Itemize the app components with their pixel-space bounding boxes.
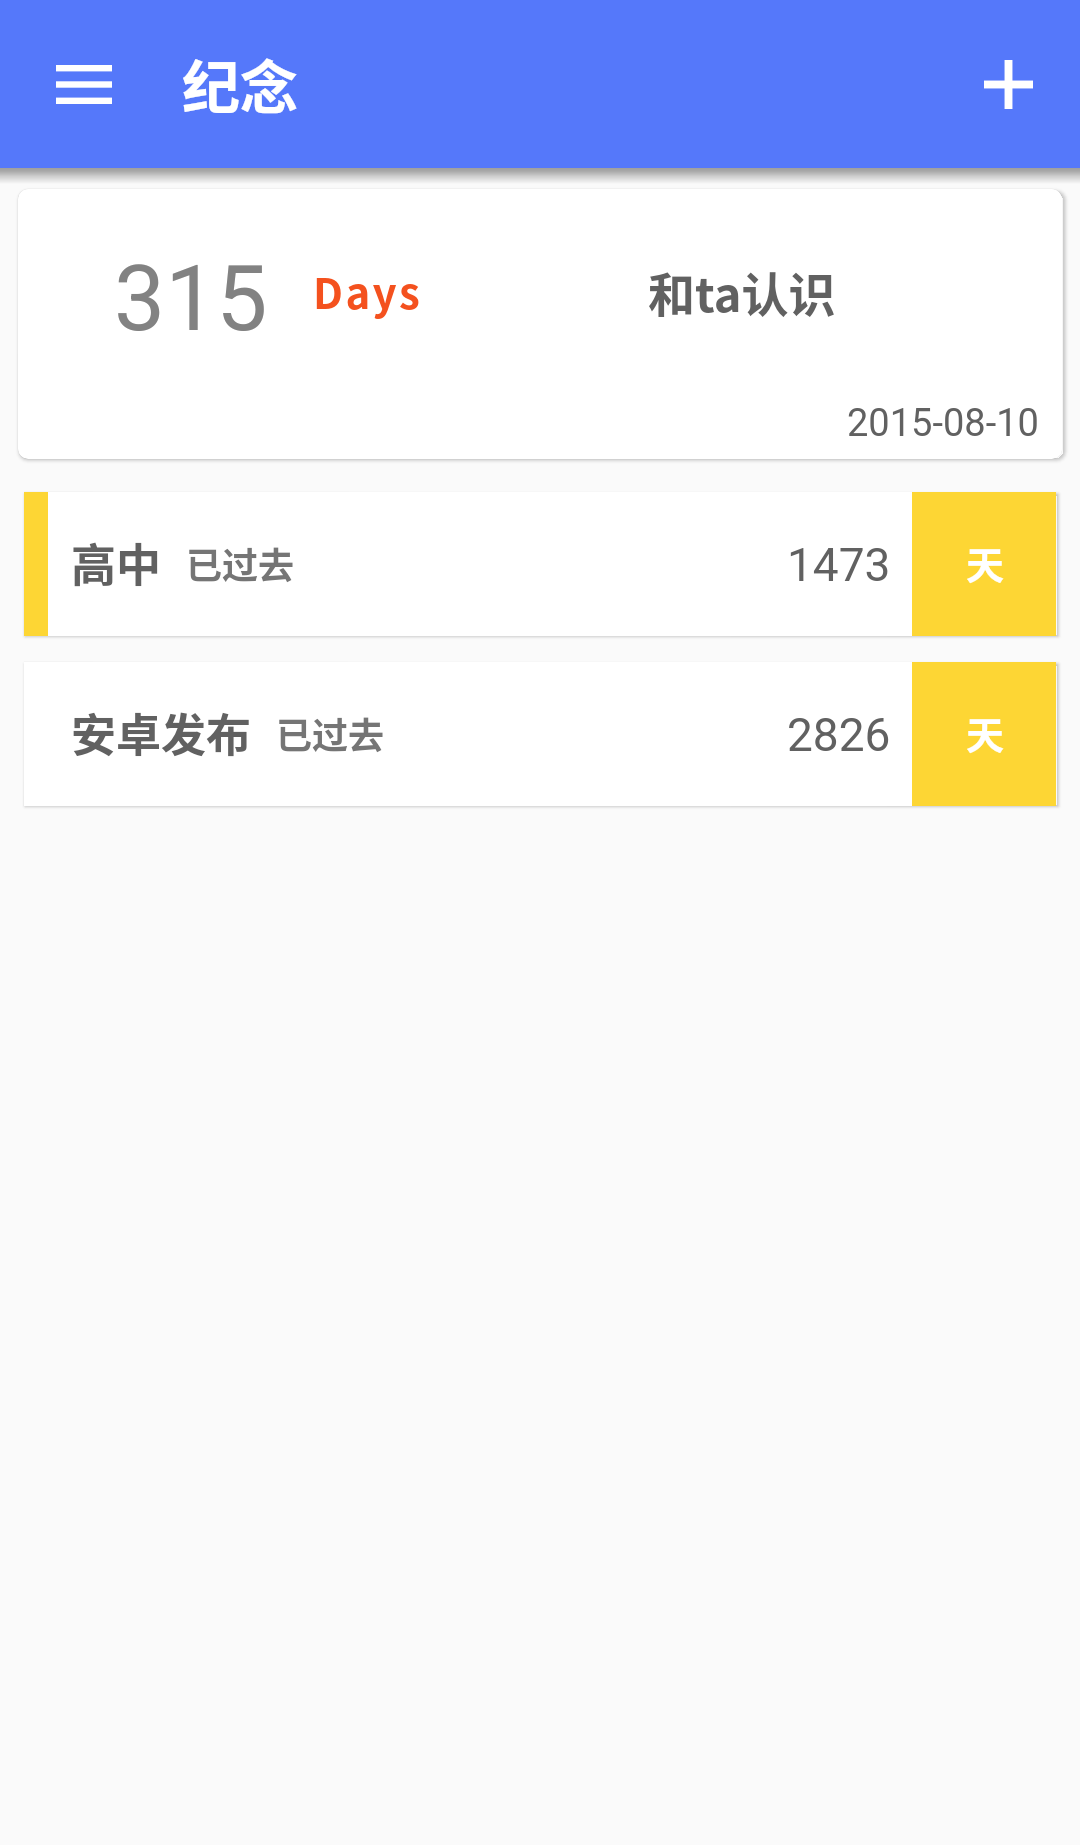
button[interactable]: 安卓发布 — [24, 662, 1056, 806]
staticText: 315 — [114, 246, 268, 353]
staticText: 高中 — [71, 530, 162, 595]
button[interactable]: 315 — [18, 189, 1062, 459]
staticText: 1473 — [787, 538, 891, 592]
staticText: 2015-08-10 — [847, 401, 1039, 446]
staticText: 已过去 — [186, 537, 295, 589]
staticText: 纪念 — [182, 42, 299, 126]
staticText: 安卓发布 — [71, 700, 252, 765]
button[interactable]: 高中 — [24, 492, 1056, 636]
button[interactable]: Open navigation menu — [28, 28, 140, 140]
staticText: 天 — [966, 535, 1005, 590]
staticText: Days — [313, 260, 423, 321]
staticText: 2826 — [787, 708, 891, 762]
staticText: 天 — [966, 705, 1005, 760]
button[interactable]: Add anniversary — [952, 28, 1064, 140]
staticText: 已过去 — [276, 707, 385, 759]
staticText: 和ta认识 — [648, 257, 836, 325]
